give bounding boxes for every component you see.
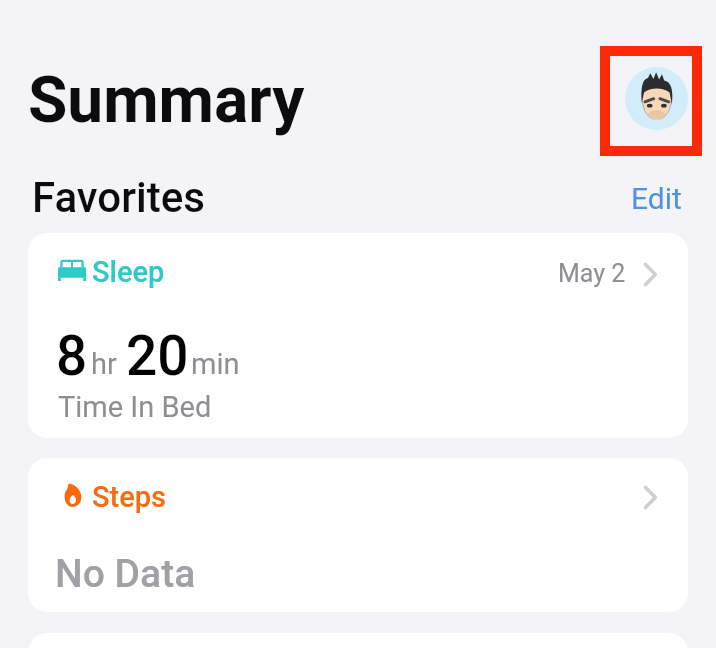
button[interactable]: Profile	[600, 46, 702, 156]
staticText: Summary	[28, 63, 305, 138]
button[interactable]: Sleep	[28, 233, 688, 438]
staticText: Steps	[92, 480, 167, 514]
staticText: Edit	[631, 181, 682, 216]
staticText: Favorites	[32, 173, 205, 222]
staticText: No Data	[55, 551, 196, 597]
staticText: 8	[56, 324, 88, 388]
staticText: min	[191, 347, 240, 381]
staticText: 20	[126, 324, 189, 388]
staticText: hr	[91, 347, 117, 381]
button[interactable]: Edit	[616, 176, 696, 220]
button[interactable]: Steps	[28, 458, 688, 612]
staticText: Sleep	[92, 255, 165, 289]
staticText: May 2	[558, 259, 626, 288]
staticText: Time In Bed	[58, 390, 212, 424]
